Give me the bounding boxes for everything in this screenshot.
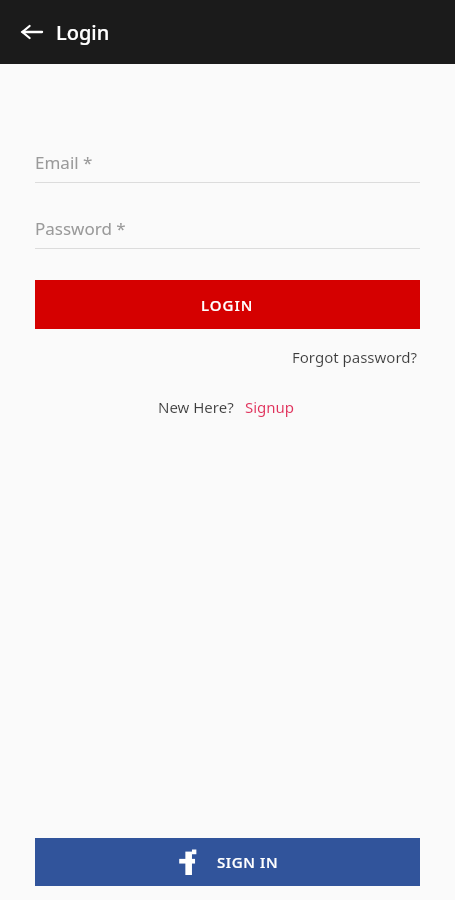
button[interactable]: Password *	[35, 208, 420, 249]
button[interactable]: Forgot password?	[290, 343, 420, 371]
staticText: New Here?	[158, 397, 234, 417]
staticText: Forgot password?	[292, 347, 418, 367]
button[interactable]: SIGN IN	[35, 838, 420, 886]
button[interactable]: Email *	[35, 142, 420, 183]
staticText: LOGIN	[201, 295, 254, 315]
button[interactable]: Signup	[243, 393, 297, 421]
staticText: Email *	[35, 151, 93, 174]
button[interactable]: LOGIN	[35, 280, 420, 329]
staticText: Password *	[35, 217, 126, 240]
staticText: SIGN IN	[217, 852, 279, 872]
staticText: Signup	[245, 397, 295, 417]
button[interactable]: Back	[14, 14, 50, 50]
staticText: Login	[56, 19, 110, 46]
